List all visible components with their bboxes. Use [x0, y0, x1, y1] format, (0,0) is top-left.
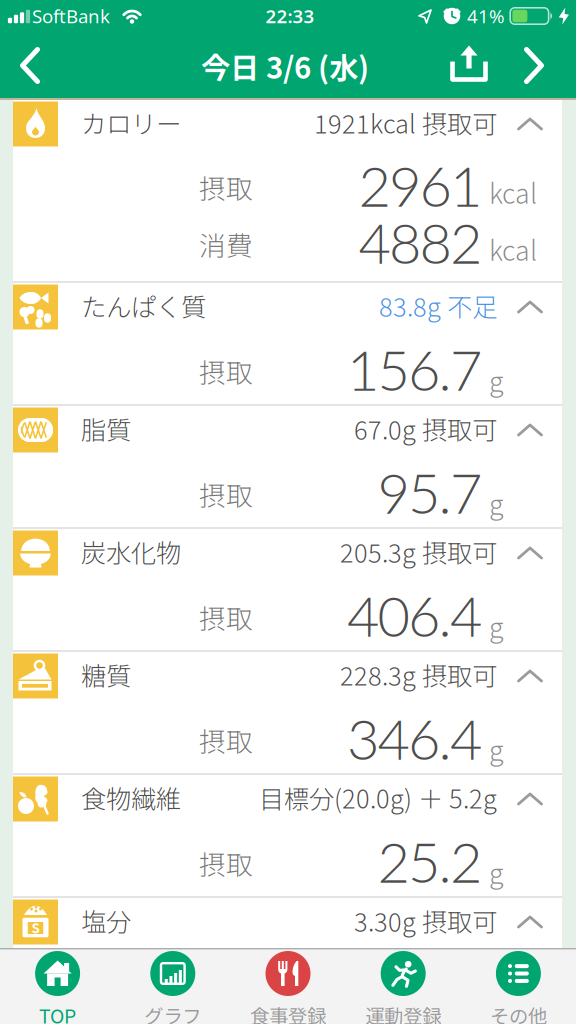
- staticText: 摂取: [199, 168, 253, 206]
- staticText: 運動登録: [365, 1001, 441, 1024]
- staticText: 炭水化物: [81, 533, 181, 570]
- staticText: g: [489, 361, 504, 399]
- staticText: 67.0g 摂取可: [354, 410, 497, 447]
- staticText: 406.4: [347, 581, 482, 649]
- staticText: TOP: [39, 1001, 76, 1024]
- staticText: 目標分(20.0g) ＋ 5.2g: [259, 779, 497, 816]
- staticText: g: [489, 607, 504, 645]
- staticText: 228.3g 摂取可: [340, 656, 497, 693]
- staticText: 95.7: [377, 458, 482, 526]
- staticText: g: [489, 853, 504, 891]
- staticText: たんぱく質: [81, 287, 206, 324]
- staticText: 22:33: [265, 4, 314, 28]
- button[interactable]: Previous day: [7, 37, 52, 94]
- button[interactable]: 炭水化物: [0, 529, 576, 576]
- staticText: 消費: [199, 225, 253, 263]
- staticText: 食事登録: [250, 1001, 326, 1024]
- staticText: 1921kcal 摂取可: [314, 104, 497, 141]
- button[interactable]: グラフ: [115, 955, 230, 1024]
- staticText: 41%: [467, 4, 505, 28]
- staticText: 摂取: [199, 844, 253, 882]
- button[interactable]: 運動登録: [346, 955, 461, 1024]
- staticText: 摂取: [199, 721, 253, 759]
- staticText: 塩分: [81, 902, 131, 939]
- staticText: S: [31, 918, 39, 937]
- staticText: グラフ: [144, 1001, 201, 1024]
- button[interactable]: Share: [445, 40, 493, 87]
- staticText: 摂取: [199, 598, 253, 636]
- staticText: カロリー: [81, 104, 181, 141]
- button[interactable]: 食事登録: [230, 955, 346, 1024]
- staticText: kcal: [489, 173, 537, 211]
- staticText: 糖質: [81, 656, 131, 693]
- button[interactable]: 塩分: [0, 898, 576, 945]
- staticText: g: [489, 730, 504, 768]
- button[interactable]: TOP: [0, 955, 115, 1024]
- staticText: 156.7: [347, 335, 482, 403]
- button[interactable]: 脂質: [0, 406, 576, 453]
- button[interactable]: その他: [461, 955, 576, 1024]
- staticText: 4882: [358, 208, 482, 276]
- staticText: 摂取: [199, 352, 253, 390]
- staticText: 25.2: [377, 827, 482, 895]
- staticText: 食物繊維: [81, 779, 181, 816]
- button[interactable]: 糖質: [0, 652, 576, 699]
- staticText: 83.8g 不足: [379, 287, 497, 324]
- staticText: その他: [490, 1001, 547, 1024]
- staticText: 今日 3/6 (水): [201, 45, 369, 87]
- button[interactable]: Next day: [511, 37, 556, 94]
- button[interactable]: 今日 3/6 (水): [193, 39, 377, 93]
- staticText: 摂取: [199, 475, 253, 513]
- staticText: 3.30g 摂取可: [354, 902, 497, 939]
- staticText: kcal: [489, 230, 537, 268]
- staticText: g: [489, 484, 504, 522]
- staticText: 脂質: [81, 410, 131, 447]
- button[interactable]: 食物繊維: [0, 775, 576, 822]
- staticText: 205.3g 摂取可: [340, 533, 497, 570]
- staticText: 346.4: [347, 704, 482, 772]
- staticText: 2961: [358, 151, 482, 219]
- button[interactable]: たんぱく質: [0, 283, 576, 330]
- staticText: SoftBank: [32, 4, 110, 28]
- button[interactable]: カロリー: [0, 100, 576, 147]
